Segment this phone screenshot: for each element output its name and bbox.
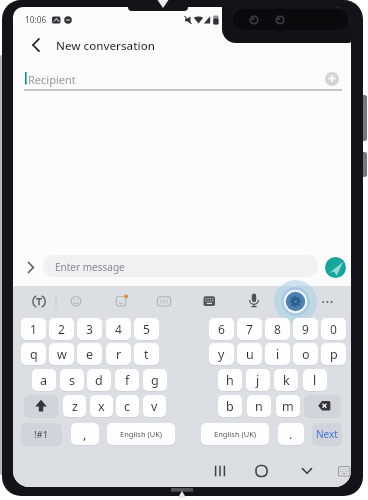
- button[interactable]: ,: [71, 423, 99, 445]
- staticText: k: [283, 372, 290, 389]
- button[interactable]: .: [278, 423, 304, 445]
- button[interactable]: w: [49, 343, 74, 365]
- button[interactable]: t: [134, 343, 159, 365]
- button[interactable]: n: [247, 395, 271, 417]
- staticText: 2: [58, 321, 65, 337]
- button[interactable]: 1: [21, 318, 46, 340]
- staticText: m: [282, 398, 294, 415]
- button[interactable]: [43, 255, 318, 277]
- staticText: w: [57, 346, 67, 363]
- staticText: English (UK): [120, 429, 163, 439]
- staticText: 0: [330, 321, 337, 337]
- button[interactable]: [68, 294, 84, 310]
- button[interactable]: [336, 462, 351, 480]
- staticText: q: [30, 346, 38, 363]
- button[interactable]: l: [303, 369, 327, 391]
- staticText: c: [124, 398, 131, 415]
- button[interactable]: j: [246, 369, 270, 391]
- button[interactable]: [246, 294, 262, 310]
- button[interactable]: [319, 294, 335, 310]
- staticText: s: [69, 372, 75, 389]
- staticText: i: [276, 346, 280, 363]
- button[interactable]: Next: [312, 423, 342, 445]
- button[interactable]: v: [143, 395, 166, 417]
- button[interactable]: 8: [265, 318, 290, 340]
- staticText: 3: [86, 321, 93, 337]
- staticText: Recipient: [28, 72, 76, 87]
- button[interactable]: 9: [293, 318, 318, 340]
- staticText: 10:06: [25, 14, 47, 25]
- button[interactable]: m: [276, 395, 300, 417]
- staticText: Next: [316, 427, 338, 441]
- button[interactable]: [325, 72, 339, 86]
- button[interactable]: [296, 462, 318, 480]
- staticText: j: [256, 372, 260, 389]
- staticText: l: [313, 372, 317, 389]
- staticText: !#1: [34, 428, 49, 441]
- button[interactable]: [31, 294, 47, 310]
- staticText: 4: [115, 321, 122, 337]
- button[interactable]: g: [143, 369, 167, 391]
- button[interactable]: s: [60, 369, 84, 391]
- staticText: x: [98, 398, 105, 415]
- button[interactable]: [286, 292, 306, 312]
- button[interactable]: [24, 395, 58, 417]
- button[interactable]: h: [218, 369, 242, 391]
- staticText: English (UK): [214, 429, 257, 439]
- staticText: y: [218, 346, 225, 363]
- button[interactable]: 7: [237, 318, 262, 340]
- button[interactable]: k: [274, 369, 298, 391]
- staticText: New conversation: [56, 38, 155, 54]
- staticText: n: [255, 398, 263, 415]
- staticText: f: [125, 372, 130, 389]
- button[interactable]: [251, 462, 273, 480]
- button[interactable]: c: [116, 395, 139, 417]
- button[interactable]: !#1: [21, 423, 62, 445]
- button[interactable]: i: [265, 343, 290, 365]
- button[interactable]: u: [237, 343, 262, 365]
- button[interactable]: e: [77, 343, 102, 365]
- button[interactable]: [156, 294, 172, 310]
- staticText: 6: [218, 321, 225, 337]
- button[interactable]: a: [32, 369, 56, 391]
- staticText: a: [40, 372, 48, 389]
- button[interactable]: [25, 35, 47, 55]
- button[interactable]: English (UK): [107, 423, 175, 445]
- staticText: 5: [143, 321, 150, 337]
- staticText: 1: [30, 321, 37, 337]
- staticText: v: [151, 398, 158, 415]
- staticText: Enter message: [55, 260, 125, 274]
- button[interactable]: z: [63, 395, 86, 417]
- staticText: r: [116, 346, 122, 363]
- button[interactable]: f: [115, 369, 139, 391]
- button[interactable]: 2: [49, 318, 74, 340]
- button[interactable]: o: [293, 343, 318, 365]
- staticText: 7: [246, 321, 253, 337]
- button[interactable]: 3: [77, 318, 102, 340]
- staticText: o: [302, 346, 310, 363]
- button[interactable]: [325, 257, 346, 278]
- staticText: h: [226, 372, 234, 389]
- staticText: 8: [274, 321, 281, 337]
- button[interactable]: x: [90, 395, 113, 417]
- button[interactable]: 4: [106, 318, 131, 340]
- staticText: p: [330, 346, 338, 363]
- button[interactable]: q: [21, 343, 46, 365]
- button[interactable]: [201, 294, 217, 310]
- button[interactable]: r: [106, 343, 131, 365]
- button[interactable]: p: [321, 343, 346, 365]
- staticText: b: [226, 398, 234, 415]
- button[interactable]: [24, 67, 314, 91]
- button[interactable]: [209, 462, 231, 480]
- button[interactable]: English (UK): [201, 423, 269, 445]
- staticText: z: [72, 398, 78, 415]
- button[interactable]: b: [218, 395, 242, 417]
- button[interactable]: d: [87, 369, 111, 391]
- button[interactable]: [113, 294, 129, 310]
- button[interactable]: [304, 395, 341, 417]
- button[interactable]: 0: [321, 318, 346, 340]
- button[interactable]: 6: [209, 318, 234, 340]
- staticText: g: [151, 372, 159, 389]
- button[interactable]: y: [209, 343, 234, 365]
- button[interactable]: 5: [134, 318, 159, 340]
